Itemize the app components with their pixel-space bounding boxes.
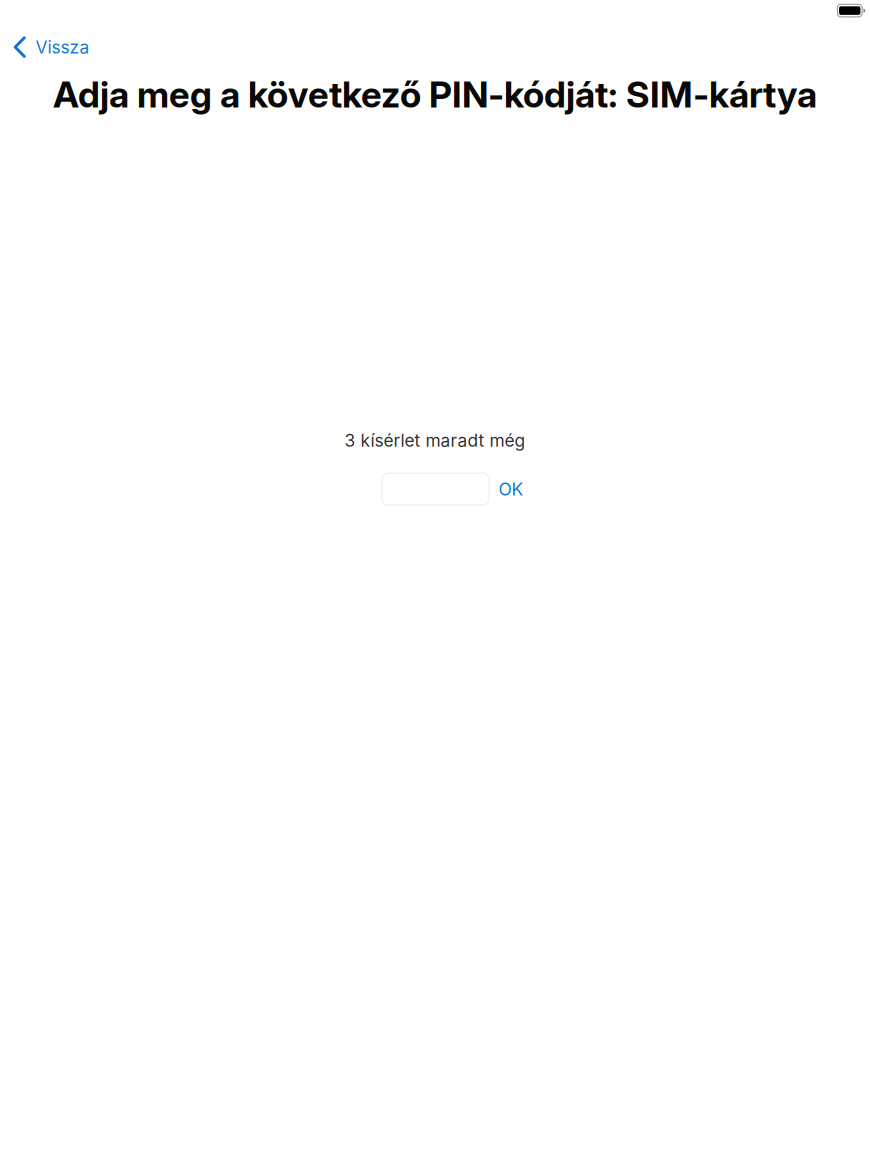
staticText: OK [499, 479, 524, 500]
staticText: 3 kísérlet maradt még [344, 430, 525, 451]
staticText: Vissza [36, 37, 90, 58]
button[interactable]: OK [494, 471, 529, 508]
button[interactable]: Vissza [0, 29, 106, 65]
staticText: Adja meg a következő PIN-kódját: SIM-kár… [53, 72, 817, 116]
button[interactable]: PIN-kód [382, 473, 489, 505]
